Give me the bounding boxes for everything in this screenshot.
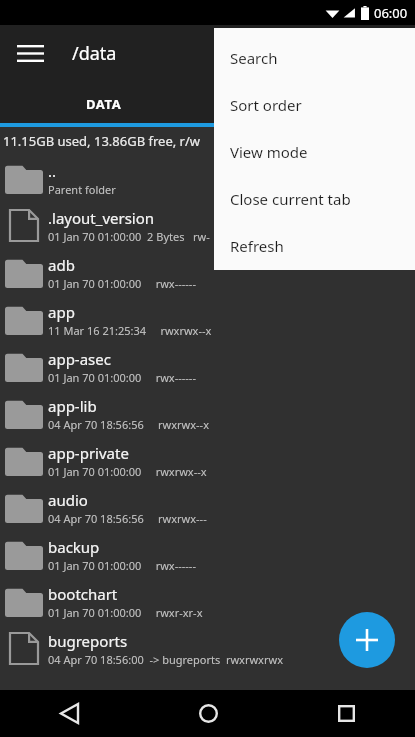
button[interactable]: DATA: [0, 81, 207, 127]
staticText: app-asec: [48, 349, 111, 369]
staticText: Close current tab: [230, 189, 351, 209]
staticText: ..: [48, 161, 57, 181]
staticText: backup: [48, 537, 100, 557]
staticText: 11 Mar 16 21:25:34 rwxrwx--x: [48, 323, 212, 338]
button[interactable]: bugreports: [0, 625, 415, 672]
staticText: 01 Jan 70 01:00:00 rwx------: [48, 276, 196, 291]
staticText: 01 Jan 70 01:00:00 rwxr-xr-x: [48, 605, 203, 620]
staticText: .layout_version: [48, 208, 155, 228]
button[interactable]: Add: [339, 612, 395, 668]
button[interactable]: Home: [139, 690, 277, 737]
button[interactable]: app-lib: [0, 390, 415, 437]
staticText: 06:00: [374, 4, 408, 22]
staticText: 04 Apr 70 18:56:56 rwxrwx---: [48, 511, 207, 526]
button[interactable]: Search: [214, 34, 415, 81]
button[interactable]: Close current tab: [214, 175, 415, 222]
button[interactable]: app-private: [0, 437, 415, 484]
button[interactable]: Refresh: [214, 222, 415, 269]
button[interactable]: adb: [0, 249, 415, 296]
staticText: app-lib: [48, 396, 97, 416]
button[interactable]: app-asec: [0, 343, 415, 390]
staticText: 01 Jan 70 01:00:00 2 Bytes rw-: [48, 229, 210, 244]
staticText: 01 Jan 70 01:00:00 rwx------: [48, 558, 196, 573]
staticText: 04 Apr 70 18:56:00 -> bugreports rwxrwxr…: [48, 652, 283, 667]
staticText: bootchart: [48, 584, 118, 604]
staticText: 01 Jan 70 01:00:00 rwx------: [48, 370, 196, 385]
button[interactable]: bootchart: [0, 578, 415, 625]
staticText: 01 Jan 70 01:00:00 rwxrwx--x: [48, 464, 207, 479]
staticText: app-private: [48, 443, 129, 463]
button[interactable]: app: [0, 296, 415, 343]
button[interactable]: View mode: [214, 128, 415, 175]
staticText: app: [48, 302, 75, 322]
staticText: Parent folder: [48, 182, 116, 197]
staticText: 11.15GB used, 13.86GB free, r/w: [3, 132, 201, 150]
button[interactable]: Open navigation drawer: [8, 31, 52, 75]
button[interactable]: Sort order: [214, 81, 415, 128]
staticText: View mode: [230, 142, 308, 162]
staticText: audio: [48, 490, 88, 510]
button[interactable]: backup: [0, 531, 415, 578]
staticText: adb: [48, 255, 75, 275]
staticText: Refresh: [230, 236, 284, 256]
button[interactable]: audio: [0, 484, 415, 531]
button[interactable]: Back: [0, 690, 139, 737]
staticText: bugreports: [48, 631, 128, 651]
button[interactable]: ..: [0, 155, 415, 202]
button[interactable]: Recent apps: [277, 690, 415, 737]
staticText: /data: [72, 41, 117, 66]
staticText: DATA: [86, 95, 122, 113]
button[interactable]: .layout_version: [0, 202, 415, 249]
staticText: 04 Apr 70 18:56:56 rwxrwx--x: [48, 417, 209, 432]
staticText: Search: [230, 48, 278, 68]
staticText: Sort order: [230, 95, 302, 115]
